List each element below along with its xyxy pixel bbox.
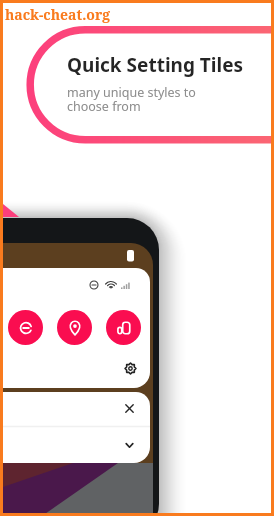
button[interactable]: Close	[125, 404, 134, 413]
button[interactable]: Volume	[106, 310, 141, 345]
staticText: hack-cheat.org	[5, 5, 111, 24]
button[interactable]: Location	[57, 310, 92, 345]
staticText: many unique styles to choose from	[67, 84, 196, 115]
button[interactable]: Settings	[124, 362, 137, 375]
button[interactable]: Do not disturb	[8, 310, 43, 345]
button[interactable]: Expand	[125, 441, 134, 450]
staticText: Quick Setting Tiles	[67, 52, 244, 78]
